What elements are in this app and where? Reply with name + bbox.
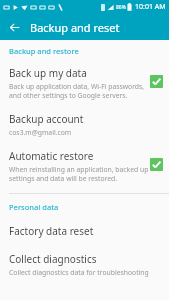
staticText: 86% <box>116 4 126 11</box>
staticText: Factory data reset <box>9 224 94 238</box>
button[interactable]: Automatic restore <box>0 149 169 183</box>
staticText: Back up application data, Wi-Fi password… <box>9 82 145 100</box>
button[interactable]: Backup account <box>0 112 169 137</box>
staticText: Back up my data <box>9 66 87 80</box>
staticText: Automatic restore <box>9 149 94 163</box>
button[interactable]: Factory data reset <box>0 224 169 238</box>
button[interactable]: Toggle Automatic restore <box>150 158 163 171</box>
staticText: Personal data <box>9 202 59 212</box>
staticText: Collect diagnostics data for troubleshoo… <box>9 268 149 277</box>
button[interactable]: Back <box>5 18 23 36</box>
staticText: Backup and reset <box>30 20 120 35</box>
staticText: 10:01 AM <box>135 2 166 12</box>
staticText: Collect diagnostics <box>9 252 97 266</box>
button[interactable]: Toggle Back up my data <box>150 75 163 88</box>
button[interactable]: Back up my data <box>0 66 169 100</box>
staticText: Backup account <box>9 112 84 126</box>
staticText: When reinstalling an application, backed… <box>9 165 149 183</box>
staticText: Backup and restore <box>9 46 79 56</box>
staticText: cos3.m@gmail.com <box>9 128 72 137</box>
button[interactable]: Collect diagnostics <box>0 252 169 277</box>
